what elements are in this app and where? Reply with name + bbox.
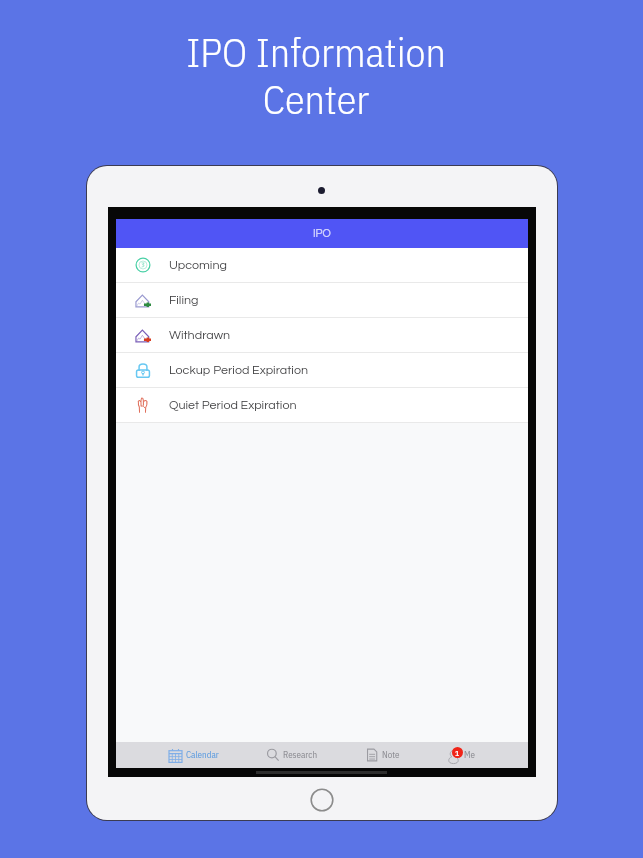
button[interactable]: Note — [365, 742, 400, 768]
staticText: Quiet Period Expiration — [169, 399, 297, 412]
staticText: Filing — [169, 294, 199, 307]
button[interactable]: Lockup Period Expiration — [116, 353, 528, 388]
button[interactable]: 1 — [447, 742, 476, 768]
button[interactable]: Withdrawn — [116, 318, 528, 353]
staticText: Calendar — [186, 749, 219, 761]
staticText: Upcoming — [169, 259, 227, 272]
staticText: Withdrawn — [169, 329, 231, 342]
staticText: Lockup Period Expiration — [169, 364, 309, 377]
staticText: Me — [464, 749, 476, 761]
staticText: IPO Information Center — [186, 26, 446, 125]
staticText: 1 — [455, 748, 460, 758]
button[interactable]: Upcoming — [116, 248, 528, 283]
staticText: Note — [382, 749, 400, 761]
button[interactable]: Quiet Period Expiration — [116, 388, 528, 423]
staticText: Research — [283, 749, 318, 761]
button[interactable]: Calendar — [168, 742, 219, 768]
button[interactable]: Filing — [116, 283, 528, 318]
button[interactable]: Research — [266, 742, 318, 768]
staticText: IPO — [313, 228, 331, 239]
